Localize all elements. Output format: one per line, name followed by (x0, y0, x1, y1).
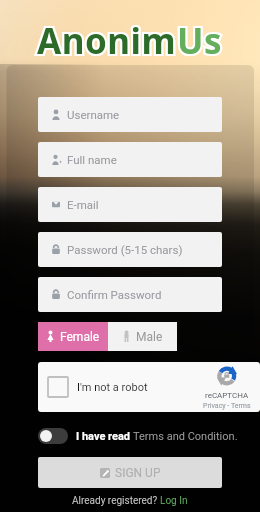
staticText: Password (5-15 chars) (67, 243, 183, 256)
button[interactable]: Log In (160, 495, 188, 507)
staticText: Confirm Password (67, 288, 162, 301)
staticText: Terms and Condition. (133, 430, 238, 443)
staticText: Anonim (37, 17, 177, 65)
staticText: Us (177, 17, 223, 65)
button[interactable]: Accept terms (38, 428, 68, 444)
staticText: Anonim (37, 17, 177, 65)
button[interactable]: Female (38, 322, 108, 351)
staticText: E-mail (67, 198, 99, 211)
button[interactable]: Male (108, 322, 177, 351)
staticText: SIGN UP (115, 466, 161, 480)
staticText: Male (136, 330, 163, 344)
staticText: reCAPTCHA (205, 391, 249, 400)
button[interactable]: E-mail (38, 187, 222, 222)
staticText: Username (67, 108, 120, 121)
button[interactable]: I'm not a robot (38, 362, 260, 412)
staticText: I have read (76, 430, 133, 443)
staticText: Female (60, 330, 100, 344)
staticText: I'm not a robot (77, 381, 148, 394)
button[interactable]: Full name (38, 142, 222, 177)
button[interactable]: Password (5-15 chars) (38, 232, 222, 267)
staticText: Us (177, 17, 223, 65)
staticText: Privacy - Terms (203, 402, 251, 410)
staticText: Already registered? (72, 495, 160, 507)
button[interactable]: Username (38, 97, 222, 132)
button[interactable]: Confirm Password (38, 277, 222, 312)
staticText: Full name (67, 153, 117, 166)
button[interactable]: SIGN UP (38, 457, 222, 488)
